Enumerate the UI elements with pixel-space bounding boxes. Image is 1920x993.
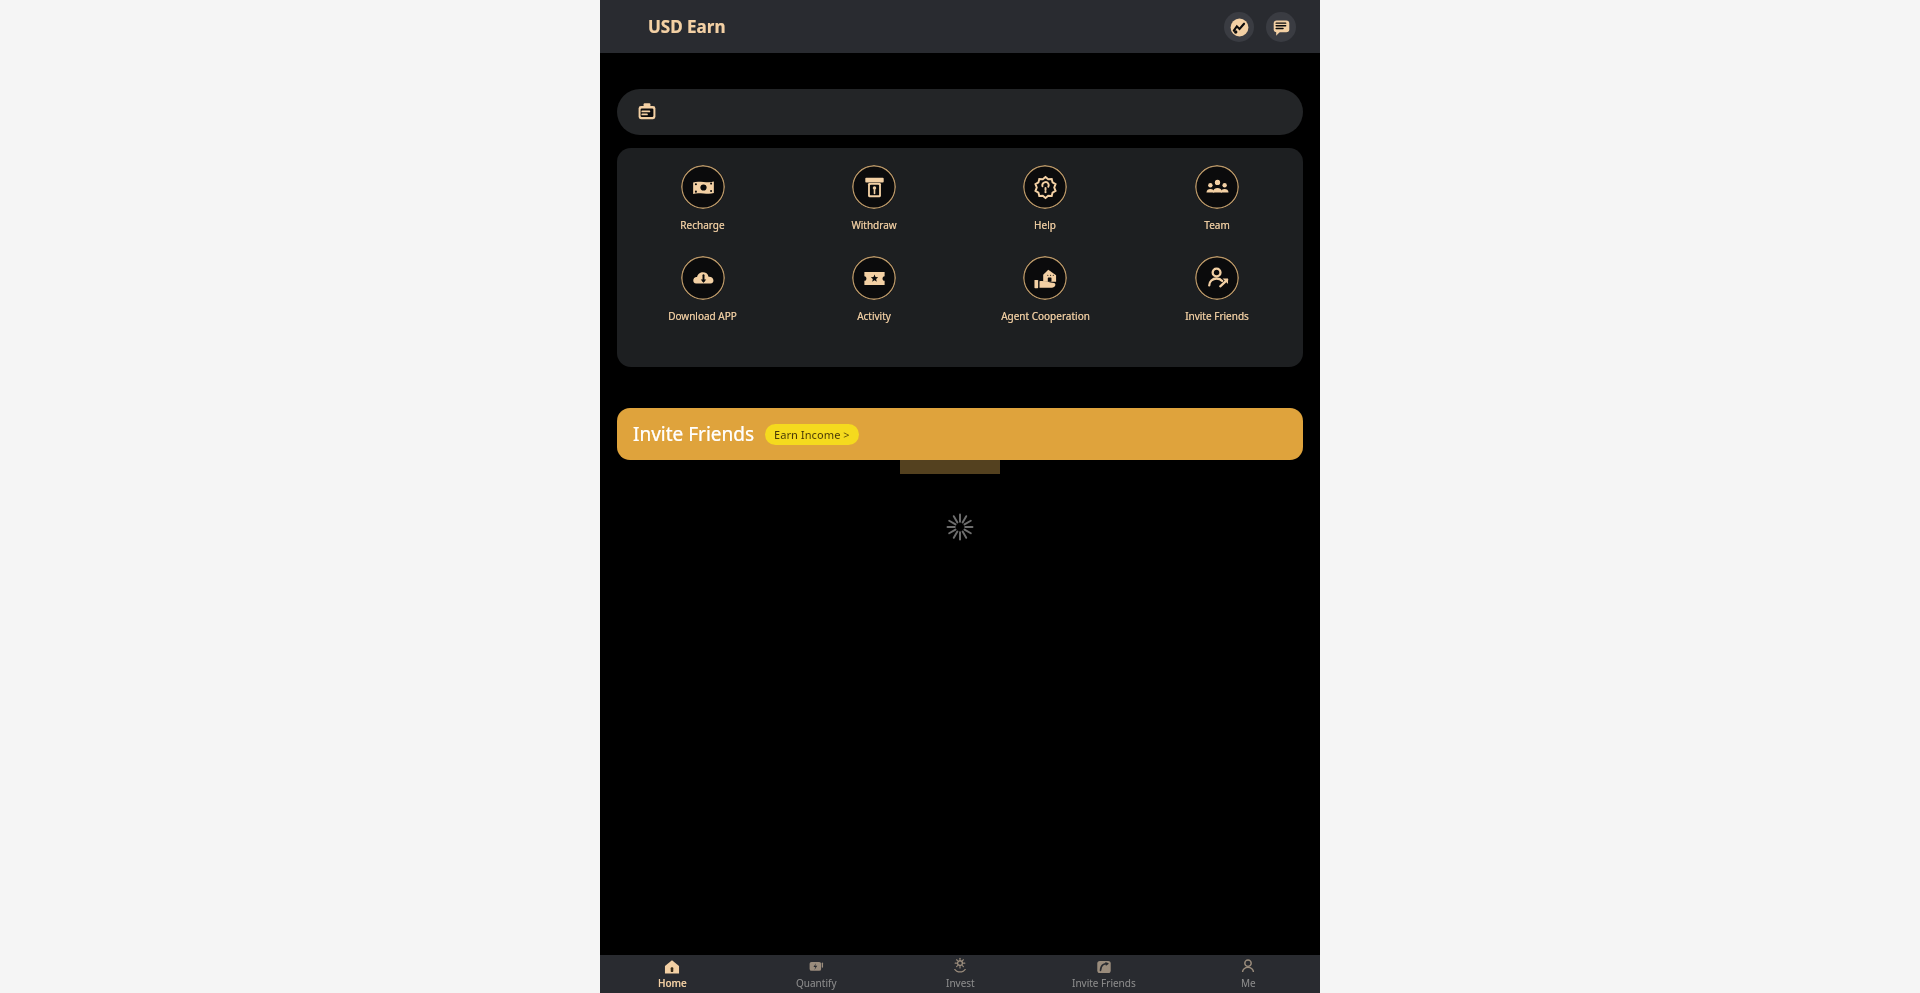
button[interactable]: Earn Income > <box>774 427 850 442</box>
staticText: Help <box>1034 218 1056 232</box>
button[interactable]: Download APP <box>617 252 788 327</box>
button[interactable]: Agent Cooperation <box>959 252 1131 327</box>
staticText: USD Earn <box>648 15 726 38</box>
button[interactable]: Invite Friends <box>1032 955 1176 993</box>
button[interactable]: Market <box>1224 12 1254 42</box>
staticText: Earn Income > <box>774 427 850 442</box>
staticText: Agent Cooperation <box>1001 309 1090 323</box>
button[interactable]: Invite Friends <box>617 408 1303 460</box>
staticText: Quantify <box>796 976 837 990</box>
button[interactable]: Messages <box>1266 12 1296 42</box>
staticText: Team <box>1204 218 1230 232</box>
button[interactable]: Team <box>1131 161 1303 236</box>
button[interactable]: Notice <box>617 89 1303 135</box>
staticText: Invest <box>946 976 975 990</box>
button[interactable]: Withdraw <box>788 161 959 236</box>
staticText: Invite Friends <box>633 421 755 447</box>
staticText: Activity <box>857 309 891 323</box>
staticText: Download APP <box>668 309 737 323</box>
button[interactable]: Invest <box>888 955 1032 993</box>
button[interactable]: Help <box>959 161 1131 236</box>
staticText: Recharge <box>680 218 725 232</box>
button[interactable]: Quantify <box>744 955 888 993</box>
other: Notice <box>637 102 657 122</box>
button[interactable]: Activity <box>788 252 959 327</box>
button[interactable]: Invite Friends <box>1131 252 1303 327</box>
staticText: Invite Friends <box>1185 309 1249 323</box>
button[interactable]: Recharge <box>617 161 788 236</box>
staticText: Home <box>658 976 687 990</box>
staticText: Invite Friends <box>1072 976 1136 990</box>
staticText: Me <box>1241 976 1256 990</box>
button[interactable]: Me <box>1176 955 1320 993</box>
button[interactable]: Home <box>600 955 744 993</box>
staticText: Withdraw <box>851 218 897 232</box>
